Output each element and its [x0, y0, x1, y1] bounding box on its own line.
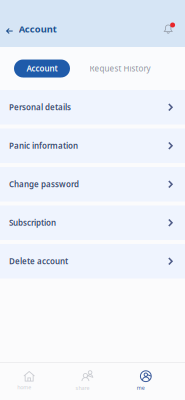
button[interactable]: Personal details — [0, 90, 185, 124]
staticText: home — [17, 384, 31, 391]
button[interactable]: Delete account — [0, 244, 185, 278]
button[interactable]: share — [58, 367, 117, 395]
button[interactable]: Notifications — [155, 17, 185, 41]
staticText: Account — [26, 63, 57, 74]
staticText: Subscription — [9, 217, 56, 228]
button[interactable]: me — [117, 367, 175, 395]
staticText: share — [75, 384, 89, 392]
staticText: Account — [19, 23, 57, 35]
button[interactable]: Change password — [0, 167, 185, 201]
staticText: Change password — [9, 179, 79, 189]
button[interactable]: home — [0, 367, 58, 395]
button[interactable]: Request History — [89, 59, 151, 77]
button[interactable]: Subscription — [0, 205, 185, 240]
button[interactable]: Panic information — [0, 128, 185, 163]
staticText: Personal details — [9, 102, 71, 112]
staticText: me — [137, 384, 145, 391]
staticText: Request History — [89, 63, 150, 74]
staticText: Panic information — [9, 140, 78, 151]
button[interactable]: Account — [14, 59, 70, 77]
button[interactable]: Account — [0, 17, 63, 41]
staticText: Delete account — [9, 256, 68, 266]
